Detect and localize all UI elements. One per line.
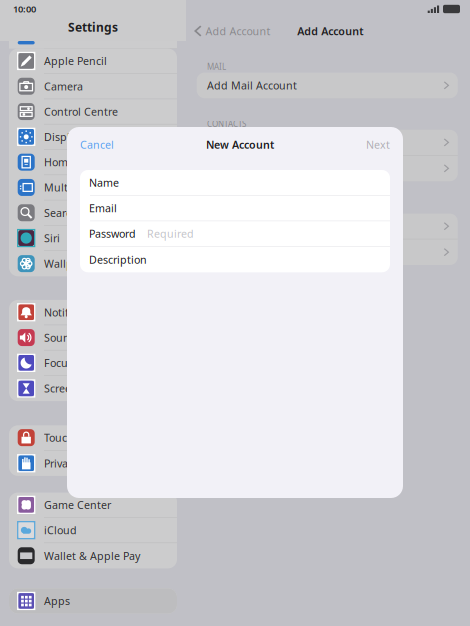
- button[interactable]: iCloud: [197, 130, 458, 155]
- staticText: Screen Time: [44, 381, 106, 396]
- staticText: Password: [89, 227, 136, 241]
- button[interactable]: Control Centre: [9, 99, 177, 124]
- staticText: Focus: [44, 356, 73, 370]
- button[interactable]: Sounds: [9, 325, 177, 350]
- button[interactable]: Display & Brightness: [9, 124, 177, 150]
- staticText: Search: [44, 206, 78, 220]
- button[interactable]: Game Center: [9, 492, 177, 518]
- button[interactable]: Focus: [9, 350, 177, 376]
- staticText: Privacy & Security: [44, 456, 132, 470]
- button[interactable]: Home Screen & App Library: [9, 150, 177, 175]
- button[interactable]: Siri: [9, 226, 177, 251]
- staticText: Cancel: [80, 137, 114, 152]
- button[interactable]: Screen Time: [9, 376, 177, 401]
- button[interactable]: Search: [9, 200, 177, 226]
- staticText: Name: [89, 175, 119, 190]
- staticText: New Account: [206, 137, 274, 152]
- staticText: Notifications: [44, 305, 107, 319]
- button[interactable]: Name: [80, 170, 390, 196]
- staticText: Settings: [68, 19, 118, 35]
- staticText: Wallet & Apple Pay: [44, 549, 140, 563]
- staticText: Control Centre: [44, 104, 118, 119]
- staticText: Add Account: [297, 24, 363, 38]
- staticText: Add Account: [207, 245, 272, 259]
- staticText: Apps: [44, 594, 70, 608]
- staticText: Camera: [44, 79, 83, 93]
- button[interactable]: Touch ID & Passcode: [9, 425, 177, 451]
- button[interactable]: iCloud: [9, 518, 177, 543]
- staticText: iCloud: [207, 135, 240, 149]
- button[interactable]: Camera: [9, 74, 177, 99]
- button[interactable]: Add Mail Account: [197, 72, 458, 98]
- staticText: Wallpaper: [44, 257, 96, 271]
- button[interactable]: Email: [80, 196, 390, 221]
- staticText: Add Account: [207, 161, 272, 175]
- button[interactable]: Add Account: [197, 239, 458, 265]
- staticText: CONTACTS: [207, 119, 246, 129]
- staticText: Touch ID & Passcode: [44, 431, 149, 445]
- button[interactable]: Description: [80, 247, 390, 272]
- staticText: Multitasking & Gestures: [44, 180, 168, 195]
- staticText: Apple Pencil: [44, 54, 107, 68]
- button[interactable]: Add Account: [197, 155, 458, 181]
- button[interactable]: Apple Pencil: [9, 49, 177, 74]
- staticText: Email: [89, 201, 117, 215]
- button[interactable]: Privacy & Security: [9, 451, 177, 476]
- button[interactable]: iCloud: [197, 214, 458, 239]
- staticText: iCloud: [44, 523, 77, 537]
- staticText: MAIL: [207, 61, 226, 72]
- staticText: Required: [147, 227, 194, 241]
- button[interactable]: Wallpaper: [9, 251, 177, 276]
- button[interactable]: Add Account: [194, 24, 270, 38]
- staticText: Add Mail Account: [207, 78, 297, 92]
- button[interactable]: Multitasking & Gestures: [9, 175, 177, 200]
- staticText: Add Account: [205, 24, 270, 38]
- staticText: Description: [89, 252, 147, 267]
- button[interactable]: Password: [80, 221, 390, 247]
- staticText: Sounds: [44, 330, 82, 345]
- button[interactable]: Cancel: [80, 137, 114, 152]
- staticText: Next: [366, 137, 390, 152]
- staticText: Game Center: [44, 498, 111, 512]
- staticText: Home Screen & App Library: [44, 155, 168, 169]
- button[interactable]: Wallet & Apple Pay: [9, 543, 177, 568]
- staticText: Siri: [44, 231, 60, 245]
- button[interactable]: Next: [366, 137, 390, 152]
- staticText: Display & Brightness: [44, 130, 150, 144]
- staticText: 10:00: [13, 3, 36, 15]
- button[interactable]: Notifications: [9, 300, 177, 325]
- button[interactable]: Apps: [9, 588, 177, 614]
